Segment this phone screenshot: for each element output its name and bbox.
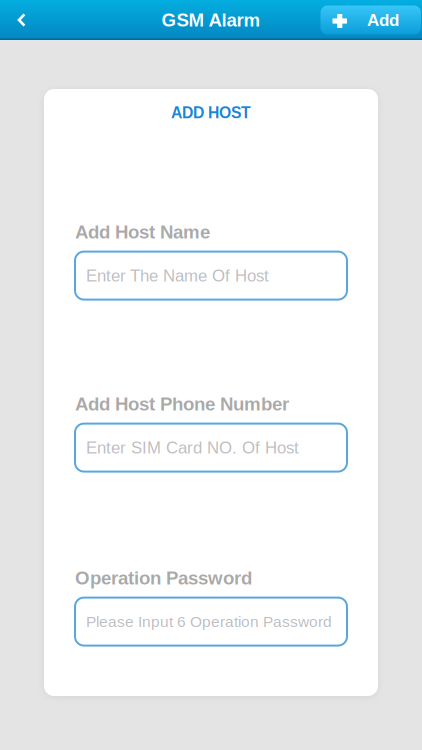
staticText: GSM Alarm — [161, 10, 260, 30]
button[interactable]: Enter The Name Of Host — [75, 252, 347, 300]
staticText: Add Host Phone Number — [75, 394, 289, 414]
staticText: Add — [367, 10, 399, 30]
button[interactable]: Enter SIM Card NO. Of Host — [75, 424, 347, 472]
staticText: Enter SIM Card NO. Of Host — [86, 438, 299, 457]
button[interactable]: Please Input 6 Operation Password — [75, 598, 347, 646]
staticText: Add Host Name — [75, 222, 210, 242]
staticText: Please Input 6 Operation Password — [86, 613, 332, 630]
button[interactable]: Add — [320, 5, 421, 34]
staticText: Enter The Name Of Host — [86, 266, 269, 285]
button[interactable]: Back — [5, 1, 39, 39]
staticText: ADD HOST — [171, 104, 251, 122]
staticText: Operation Password — [75, 568, 252, 588]
